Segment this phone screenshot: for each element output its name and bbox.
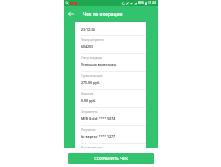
button[interactable]: Back	[64, 7, 78, 21]
staticText: Отправитель	[81, 110, 98, 114]
staticText: Успешно выполнен	[81, 62, 117, 67]
staticText: Получатель	[81, 128, 96, 132]
staticText: 604203	[81, 44, 94, 49]
staticText: MIR Gold: **** 5074	[81, 116, 116, 121]
staticText: № карты: **** 1277	[81, 134, 116, 139]
staticText: 11:33	[148, 1, 157, 5]
staticText: Сумма операции	[81, 74, 103, 78]
staticText: Комиссия	[81, 92, 94, 96]
staticText: Код авторизации	[81, 146, 103, 148]
staticText: Статус операции	[81, 56, 103, 60]
staticText: Чек по операции	[83, 11, 123, 17]
staticText: 86%	[138, 1, 144, 5]
staticText: Номер документа	[81, 38, 104, 42]
staticText: 23:12:36	[81, 27, 95, 32]
staticText: 275.00 руб.	[81, 80, 101, 85]
staticText: СОХРАНИТЬ ЧЕК	[94, 156, 128, 162]
staticText: 0.00 руб.	[81, 98, 97, 103]
button[interactable]: СОХРАНИТЬ ЧЕК	[68, 153, 154, 164]
